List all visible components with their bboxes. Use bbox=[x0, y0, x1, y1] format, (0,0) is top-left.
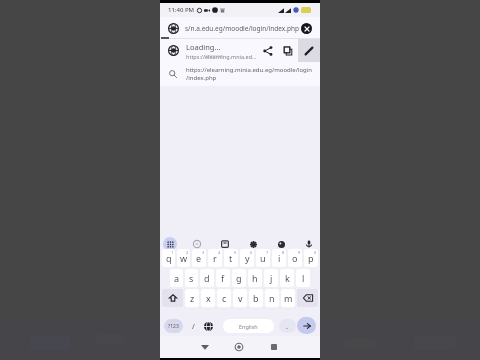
button[interactable]: Voice bbox=[302, 237, 316, 251]
button[interactable]: a bbox=[170, 269, 183, 287]
staticText: c bbox=[222, 292, 227, 304]
button[interactable]: Share bbox=[258, 39, 278, 62]
staticText: i bbox=[278, 252, 281, 264]
staticText: . bbox=[286, 321, 289, 331]
button[interactable]: Loading… bbox=[160, 39, 320, 62]
staticText: 9 bbox=[298, 250, 301, 255]
staticText: ?123 bbox=[168, 323, 179, 330]
button[interactable]: Backspace bbox=[297, 289, 318, 307]
staticText: p bbox=[308, 252, 314, 264]
button[interactable]: Home bbox=[230, 338, 248, 356]
staticText: j bbox=[270, 272, 273, 284]
staticText: 11:40 PM bbox=[168, 6, 195, 14]
button[interactable]: i bbox=[272, 249, 286, 267]
button[interactable]: Back bbox=[196, 338, 214, 356]
staticText: e bbox=[196, 252, 202, 264]
button[interactable]: Recents bbox=[265, 338, 283, 356]
button[interactable]: f bbox=[216, 269, 230, 287]
button[interactable]: Edit bbox=[298, 39, 320, 62]
staticText: 4 bbox=[218, 250, 221, 255]
button[interactable]: Clipboard bbox=[218, 237, 232, 251]
staticText: s/n.a.edu.eg/moodle/login/index.php bbox=[185, 24, 300, 33]
button[interactable]: https://elearning.minia.edu.eg/moodle/lo… bbox=[160, 62, 320, 86]
button[interactable]: b bbox=[249, 289, 263, 307]
staticText: x bbox=[206, 292, 211, 304]
staticText: a bbox=[174, 272, 180, 284]
button[interactable]: Settings bbox=[246, 237, 260, 251]
button[interactable]: d bbox=[200, 269, 214, 287]
button[interactable]: h bbox=[248, 269, 262, 287]
button[interactable]: o bbox=[288, 249, 302, 267]
staticText: q bbox=[166, 252, 172, 264]
button[interactable]: Apps bbox=[163, 237, 177, 251]
button[interactable]: l bbox=[296, 269, 310, 287]
staticText: https://elearning.minia.edu.eg/moodle/lo… bbox=[186, 66, 313, 74]
staticText: English bbox=[239, 323, 258, 330]
staticText: 0 bbox=[314, 250, 317, 255]
staticText: v bbox=[238, 292, 243, 304]
staticText: 3 bbox=[202, 250, 205, 255]
staticText: s bbox=[189, 272, 194, 284]
staticText: o bbox=[292, 252, 298, 264]
button[interactable]: Assistant bbox=[190, 237, 204, 251]
staticText: h bbox=[252, 272, 258, 284]
button[interactable]: x bbox=[201, 289, 215, 307]
button[interactable]: Emoji bbox=[274, 237, 288, 251]
staticText: / bbox=[192, 321, 195, 331]
button[interactable]: r bbox=[208, 249, 222, 267]
staticText: 1 bbox=[171, 250, 174, 255]
button[interactable]: Clear bbox=[301, 23, 312, 34]
staticText: b bbox=[253, 292, 259, 304]
button[interactable]: c bbox=[217, 289, 231, 307]
button[interactable]: Language bbox=[201, 319, 215, 333]
button[interactable]: Go bbox=[297, 317, 316, 334]
button[interactable]: z bbox=[185, 289, 199, 307]
button[interactable]: w bbox=[177, 249, 190, 267]
button[interactable]: . bbox=[279, 319, 296, 333]
staticText: f bbox=[221, 272, 225, 284]
button[interactable]: English bbox=[223, 319, 274, 333]
staticText: Loading… bbox=[186, 42, 221, 52]
staticText: 6 bbox=[250, 250, 253, 255]
staticText: https://elearning.mnia.ed… bbox=[186, 53, 257, 60]
button[interactable]: Shift bbox=[162, 289, 183, 307]
button[interactable]: p bbox=[304, 249, 318, 267]
staticText: u bbox=[260, 252, 266, 264]
staticText: w bbox=[180, 252, 188, 264]
staticText: 2 bbox=[186, 250, 189, 255]
staticText: k bbox=[285, 272, 290, 284]
staticText: t bbox=[229, 252, 233, 264]
button[interactable]: m bbox=[281, 289, 295, 307]
staticText: l bbox=[302, 272, 305, 284]
button[interactable]: k bbox=[280, 269, 294, 287]
staticText: m bbox=[284, 292, 293, 304]
staticText: 7 bbox=[266, 250, 269, 255]
staticText: z bbox=[190, 292, 195, 304]
button[interactable]: v bbox=[233, 289, 247, 307]
staticText: r bbox=[213, 252, 217, 264]
staticText: g bbox=[236, 272, 242, 284]
button[interactable]: e bbox=[192, 249, 206, 267]
staticText: 8 bbox=[282, 250, 285, 255]
button[interactable]: ?123 bbox=[164, 319, 183, 333]
staticText: d bbox=[204, 272, 210, 284]
button[interactable]: t bbox=[224, 249, 238, 267]
button[interactable]: q bbox=[162, 249, 175, 267]
button[interactable]: Copy bbox=[278, 39, 298, 62]
button[interactable]: n bbox=[265, 289, 279, 307]
button[interactable]: / bbox=[186, 319, 200, 333]
button[interactable]: g bbox=[232, 269, 246, 287]
button[interactable]: y bbox=[240, 249, 254, 267]
staticText: n bbox=[269, 292, 275, 304]
button[interactable]: u bbox=[256, 249, 270, 267]
staticText: /index.php bbox=[186, 74, 217, 82]
staticText: y bbox=[245, 252, 250, 264]
button[interactable]: s bbox=[185, 269, 198, 287]
button[interactable]: j bbox=[264, 269, 278, 287]
staticText: 5 bbox=[234, 250, 237, 255]
